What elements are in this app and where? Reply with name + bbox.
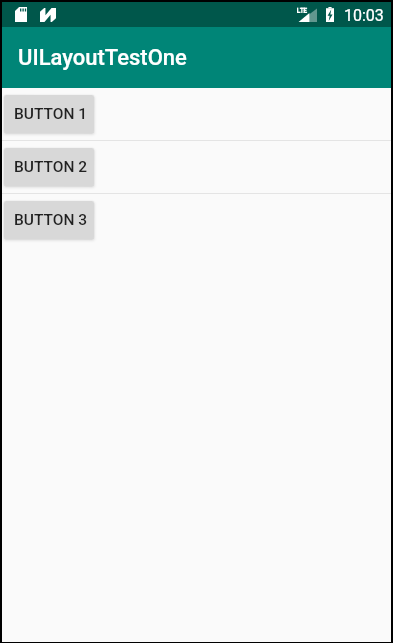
button[interactable]: BUTTON 3	[4, 201, 94, 239]
button[interactable]: BUTTON 1	[4, 95, 94, 133]
other: Battery charging	[326, 7, 334, 22]
other: LTE signal strength	[297, 7, 317, 22]
staticText: UILayoutTestOne	[18, 45, 187, 71]
other: NFC enabled	[40, 8, 56, 22]
staticText: BUTTON 2	[14, 158, 88, 176]
button[interactable]: BUTTON 2	[4, 148, 94, 186]
other: SD card	[15, 7, 27, 22]
staticText: 10:03	[344, 6, 384, 25]
staticText: BUTTON 1	[14, 105, 88, 123]
staticText: BUTTON 3	[14, 211, 88, 229]
